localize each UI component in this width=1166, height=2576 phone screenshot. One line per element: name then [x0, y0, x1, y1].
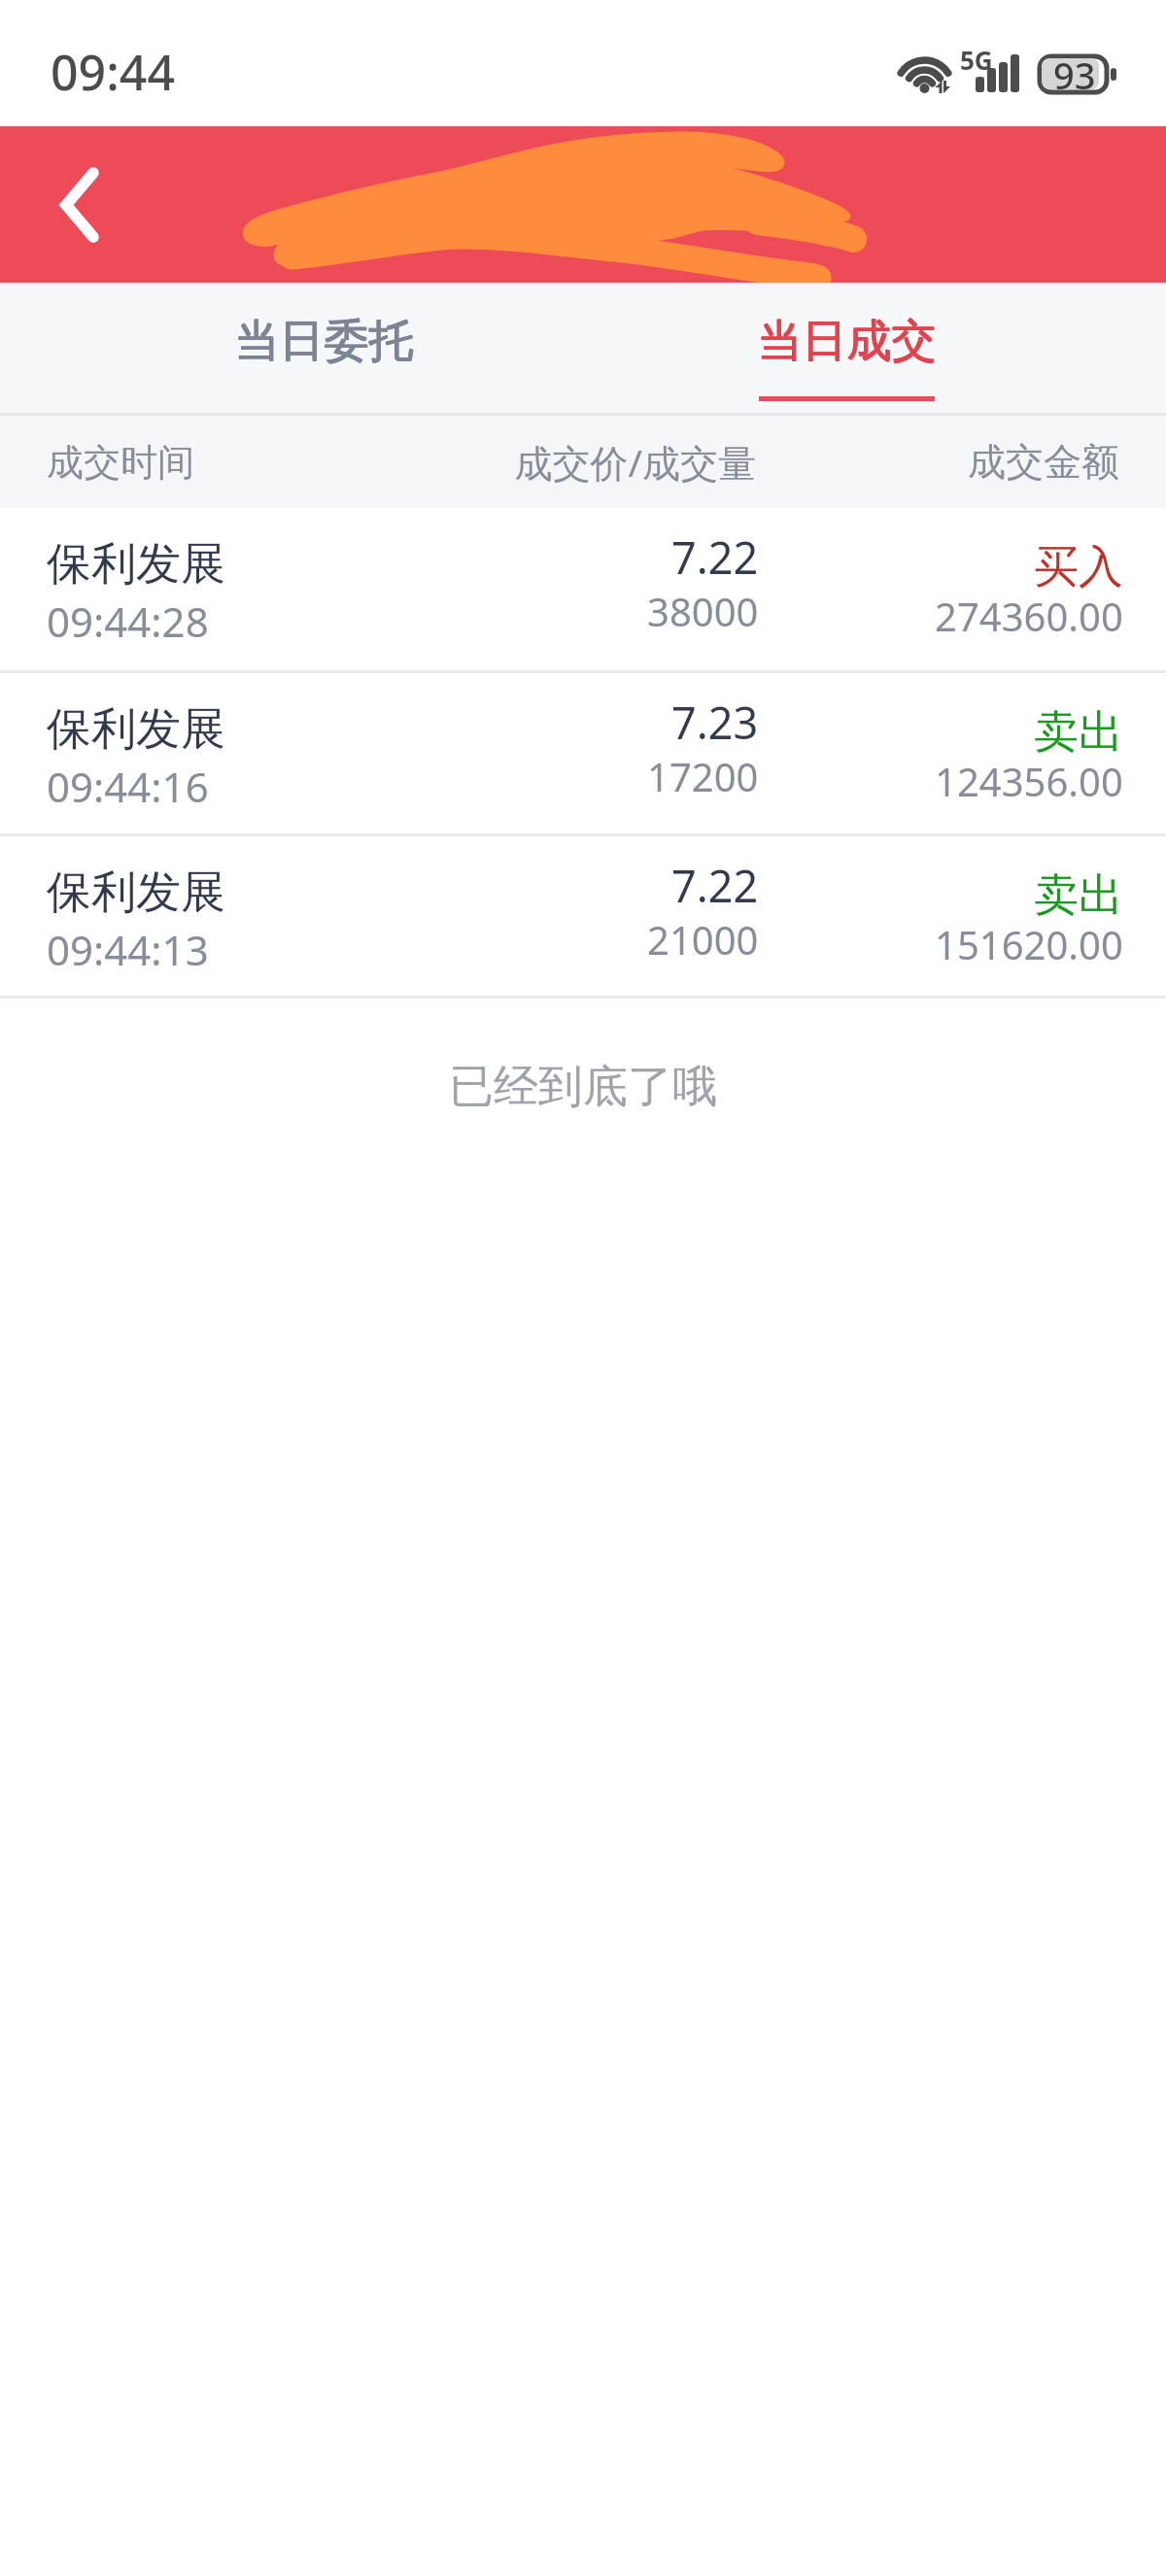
staticText: 当日成交 [758, 313, 937, 369]
button[interactable]: 保利发展 [0, 836, 1166, 996]
staticText: 17200 [647, 750, 759, 802]
staticText: 93 [1053, 50, 1096, 100]
staticText: 卖出 [1034, 704, 1123, 761]
staticText: 当日委托 [234, 314, 413, 370]
staticText: 保利发展 [47, 701, 225, 758]
staticText: 已经到底了哦 [449, 1059, 717, 1115]
staticText: 当日成交 [757, 313, 936, 369]
button[interactable]: 当日成交 [585, 283, 1108, 413]
staticText: 7.22 [671, 856, 759, 915]
staticText: 成交价/成交量 [393, 436, 756, 488]
staticText: 当日委托 [234, 313, 413, 369]
staticText: 当日成交 [757, 314, 936, 370]
staticText: 成交时间 [47, 439, 393, 486]
staticText: 保利发展 [47, 536, 225, 593]
staticText: 5G [960, 43, 993, 77]
staticText: 卖出 [1034, 867, 1123, 924]
staticText: 7.22 [671, 527, 759, 587]
staticText: 274360.00 [935, 590, 1123, 642]
staticText: 当日成交 [758, 314, 937, 370]
staticText: 38000 [647, 585, 759, 637]
staticText: 09:44:13 [47, 922, 209, 977]
button[interactable]: 当日委托 [62, 283, 585, 413]
staticText: 124356.00 [935, 755, 1123, 807]
staticText: 保利发展 [47, 864, 225, 921]
staticText: 151620.00 [935, 918, 1123, 970]
staticText: 09:44 [51, 39, 175, 105]
staticText: 当日委托 [235, 313, 414, 369]
button[interactable]: 保利发展 [0, 508, 1166, 670]
staticText: 买入 [1034, 539, 1123, 595]
staticText: 09:44:16 [47, 759, 209, 814]
staticText: 7.23 [671, 693, 759, 752]
staticText: 当日委托 [235, 314, 414, 370]
staticText: 成交金额 [756, 438, 1119, 486]
staticText: 09:44:28 [47, 593, 209, 649]
staticText: 21000 [647, 913, 759, 966]
button[interactable]: 保利发展 [0, 673, 1166, 833]
button[interactable]: Back [21, 144, 138, 260]
